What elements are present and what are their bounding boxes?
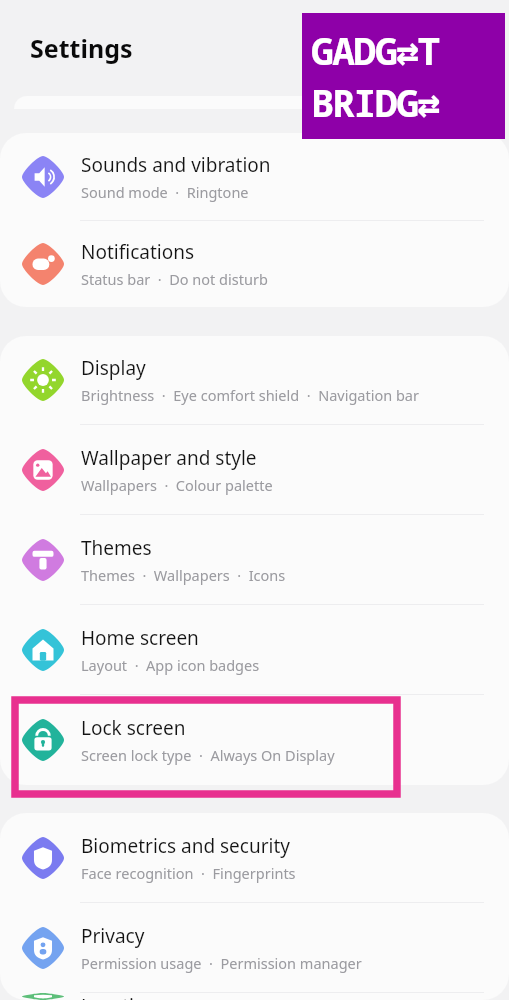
button[interactable]: Display	[0, 336, 509, 424]
staticText: Layout · App icon badges	[81, 655, 260, 675]
button[interactable]: Home screen	[0, 605, 509, 694]
staticText: Brightness · Eye comfort shield · Naviga…	[81, 385, 419, 405]
staticText: Wallpapers · Colour palette	[81, 475, 273, 495]
button[interactable]: Search settings	[14, 96, 495, 109]
staticText: Settings	[30, 31, 133, 65]
staticText: Home screen	[81, 625, 199, 651]
staticText: Location	[81, 993, 158, 1000]
staticText: Sounds and vibration	[81, 152, 271, 178]
staticText: BRIDG⇄	[311, 76, 439, 128]
staticText: Themes · Wallpapers · Icons	[81, 565, 286, 585]
staticText: Themes	[81, 535, 152, 561]
staticText: Face recognition · Fingerprints	[81, 863, 296, 883]
staticText: Privacy	[81, 923, 145, 949]
button[interactable]: Privacy	[0, 903, 509, 992]
staticText: Screen lock type · Always On Display	[81, 745, 335, 765]
staticText: Permission usage · Permission manager	[81, 953, 362, 973]
button[interactable]: Wallpaper and style	[0, 425, 509, 514]
button[interactable]: Location	[0, 993, 509, 1000]
button[interactable]: Lock screen	[0, 695, 509, 785]
staticText: GADG⇄T	[311, 24, 439, 76]
staticText: Notifications	[81, 239, 195, 265]
button[interactable]: Biometrics and security	[0, 813, 509, 902]
staticText: Lock screen	[81, 715, 186, 741]
button[interactable]: Notifications	[0, 221, 509, 307]
staticText: Biometrics and security	[81, 833, 291, 859]
staticText: Status bar · Do not disturb	[81, 269, 268, 289]
button[interactable]: Themes	[0, 515, 509, 604]
staticText: Display	[81, 355, 146, 381]
other: Gadgetbridge watermark	[302, 13, 505, 139]
button[interactable]: Sounds and vibration	[0, 133, 509, 220]
staticText: Wallpaper and style	[81, 445, 257, 471]
staticText: Sound mode · Ringtone	[81, 182, 249, 202]
